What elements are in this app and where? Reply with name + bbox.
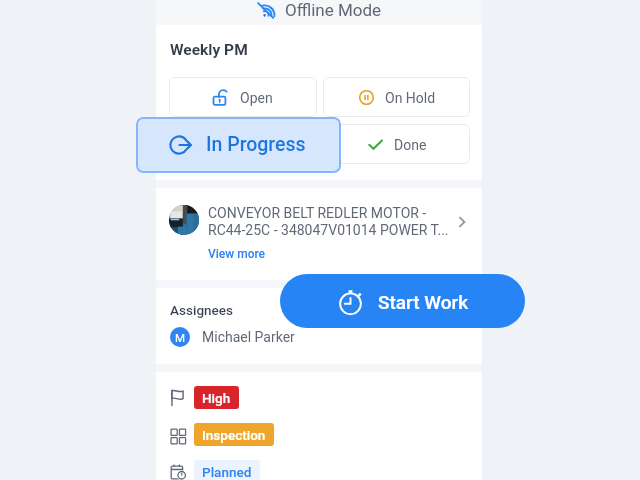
staticText: View more [208,247,266,261]
staticText: RC44-25C - 348047V01014 POWER T... [208,222,449,238]
button[interactable]: Open asset details [452,212,472,232]
staticText: M [175,331,186,344]
button[interactable]: Offline Mode [156,0,482,25]
staticText: Michael Parker [202,329,295,345]
button[interactable]: On Hold [323,77,470,117]
button[interactable]: High [170,386,239,409]
button[interactable]: View more [208,247,266,261]
button[interactable]: Done [323,124,470,164]
staticText: Planned [202,464,252,480]
button[interactable]: Open [169,77,317,117]
button[interactable]: In Progress [136,117,341,173]
staticText: Start Work [378,291,469,313]
staticText: Open [240,90,273,106]
button[interactable]: Start Work [280,274,525,328]
staticText: In Progress [206,133,306,156]
button[interactable]: CONVEYOR BELT REDLER MOTOR - [156,188,482,280]
staticText: Done [394,137,427,153]
staticText: CONVEYOR BELT REDLER MOTOR - [208,205,427,221]
staticText: Weekly PM [170,41,248,59]
staticText: High [202,390,231,406]
staticText: Offline Mode [285,0,382,20]
staticText: Inspection [202,427,266,443]
staticText: On Hold [385,90,436,106]
button[interactable]: Planned [170,460,260,480]
button[interactable]: Inspection [170,423,274,446]
staticText: Assignees [170,302,234,318]
button[interactable]: M [170,326,295,348]
